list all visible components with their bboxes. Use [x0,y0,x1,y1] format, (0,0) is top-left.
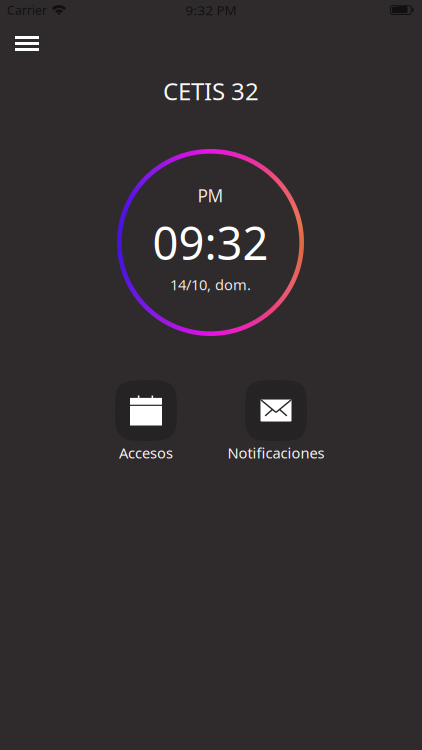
button[interactable]: Notificaciones [211,380,341,462]
staticText: 14/10, dom. [170,275,251,294]
staticText: 09:32 [152,212,268,273]
button[interactable]: Menu [0,26,54,61]
staticText: Carrier [7,2,47,18]
staticText: PM [197,184,223,207]
staticText: Accesos [119,443,173,462]
staticText: 9:32 PM [185,1,236,19]
staticText: Notificaciones [227,443,324,462]
staticText: CETIS 32 [163,75,259,107]
button[interactable]: Accesos [81,380,211,462]
